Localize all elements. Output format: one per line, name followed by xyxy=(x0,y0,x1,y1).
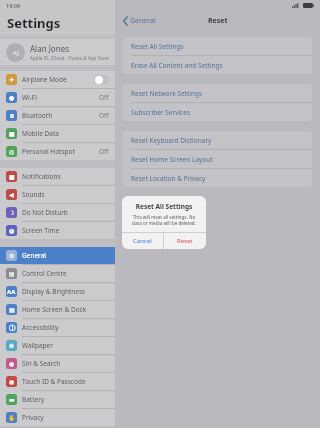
button[interactable]: ◎ xyxy=(0,143,115,160)
staticText: General xyxy=(22,251,46,260)
button[interactable]: General xyxy=(121,14,158,28)
button[interactable]: ● xyxy=(0,89,115,106)
button[interactable]: ⚙ xyxy=(0,247,115,264)
staticText: Erase All Content and Settings xyxy=(131,61,223,70)
staticText: Off xyxy=(99,111,109,120)
staticText: ◎ xyxy=(9,148,15,155)
staticText: Personal Hotspot xyxy=(22,147,75,156)
staticText: General xyxy=(130,16,156,26)
button[interactable]: Subscriber Services xyxy=(123,103,312,121)
button[interactable]: ⏱ xyxy=(0,222,115,239)
button[interactable]: Erase All Content and Settings xyxy=(123,56,312,74)
button[interactable]: Reset Network Settings xyxy=(123,84,312,102)
staticText: Cancel xyxy=(133,237,152,245)
staticText: ◀ xyxy=(9,191,14,198)
staticText: Sounds xyxy=(22,190,45,199)
staticText: ▬ xyxy=(9,396,15,403)
staticText: ■ xyxy=(9,130,15,137)
staticText: Reset xyxy=(177,237,193,245)
button[interactable]: Cancel xyxy=(122,233,163,249)
staticText: Siri & Search xyxy=(22,359,61,368)
button[interactable]: ☽ xyxy=(0,204,115,221)
staticText: Control Centre xyxy=(22,269,67,278)
staticText: ■ xyxy=(9,173,15,180)
staticText: Airplane Mode xyxy=(22,75,67,84)
staticText: ◉ xyxy=(9,360,15,367)
staticText: Settings xyxy=(7,14,61,32)
button[interactable]: B xyxy=(0,107,115,124)
staticText: ◉ xyxy=(9,378,15,385)
staticText: This will reset all settings. No data or… xyxy=(130,214,198,226)
button[interactable]: Reset Keyboard Dictionary xyxy=(123,131,312,149)
button[interactable]: ▬ xyxy=(0,391,115,408)
staticText: Alan Jones xyxy=(30,43,69,54)
button[interactable]: AJ xyxy=(0,39,115,65)
staticText: Reset All Settings xyxy=(131,42,184,51)
button[interactable]: ▤ xyxy=(0,265,115,282)
staticText: Notifications xyxy=(22,172,61,181)
staticText: Reset Location & Privacy xyxy=(131,174,206,183)
staticText: Accessibility xyxy=(22,323,59,332)
button[interactable]: AA xyxy=(0,283,115,300)
staticText: Privacy xyxy=(22,413,44,422)
button[interactable]: ⓘ xyxy=(0,319,115,336)
staticText: Mobile Data xyxy=(22,129,59,138)
staticText: ▤ xyxy=(9,270,15,277)
button[interactable]: ■ xyxy=(0,168,115,185)
button[interactable]: Reset Home Screen Layout xyxy=(123,150,312,168)
button[interactable]: ◉ xyxy=(0,355,115,372)
button[interactable]: ◀ xyxy=(0,186,115,203)
staticText: ☽ xyxy=(9,209,15,216)
staticText: Reset All Settings xyxy=(122,202,206,211)
staticText: Battery xyxy=(22,395,45,404)
button[interactable]: ❀ xyxy=(0,337,115,354)
staticText: AA xyxy=(7,288,16,296)
staticText: Reset Network Settings xyxy=(131,89,203,98)
staticText: Wallpaper xyxy=(22,341,53,350)
button[interactable]: Reset All Settings xyxy=(123,37,312,55)
button[interactable]: ■ xyxy=(0,125,115,142)
staticText: ⓘ xyxy=(9,324,15,332)
button[interactable]: ✈ xyxy=(0,71,115,88)
staticText: AJ xyxy=(13,49,19,57)
staticText: Bluetooth xyxy=(22,111,53,120)
staticText: Apple ID, iCloud, iTunes & App Store xyxy=(30,55,109,61)
staticText: ⏱ xyxy=(8,227,16,234)
staticText: Do Not Disturb xyxy=(22,208,68,217)
button[interactable]: Reset xyxy=(164,233,206,249)
staticText: Subscriber Services xyxy=(131,108,191,117)
staticText: Screen Time xyxy=(22,226,60,235)
staticText: ❀ xyxy=(9,342,15,349)
button[interactable]: ✋ xyxy=(0,409,115,426)
staticText: 19:09 xyxy=(6,2,21,9)
staticText: ✈ xyxy=(9,76,15,83)
staticText: Off xyxy=(99,93,109,102)
button[interactable]: Reset Location & Privacy xyxy=(123,169,312,187)
button[interactable]: ▦ xyxy=(0,301,115,318)
staticText: Reset Home Screen Layout xyxy=(131,155,213,164)
staticText: Off xyxy=(99,147,109,156)
staticText: Home Screen & Dock xyxy=(22,305,87,314)
staticText: Reset xyxy=(208,16,228,26)
staticText: Reset Keyboard Dictionary xyxy=(131,136,212,145)
staticText: B xyxy=(10,112,14,120)
staticText: ▦ xyxy=(9,306,15,313)
staticText: Display & Brightness xyxy=(22,287,86,296)
button[interactable]: ◉ xyxy=(0,373,115,390)
staticText: ● xyxy=(9,94,15,101)
staticText: ✋ xyxy=(8,414,16,421)
staticText: Wi-Fi xyxy=(22,93,37,102)
button[interactable]: Airplane Mode toggle xyxy=(94,75,109,84)
staticText: Touch ID & Passcode xyxy=(22,377,86,386)
staticText: ⚙ xyxy=(9,252,15,259)
